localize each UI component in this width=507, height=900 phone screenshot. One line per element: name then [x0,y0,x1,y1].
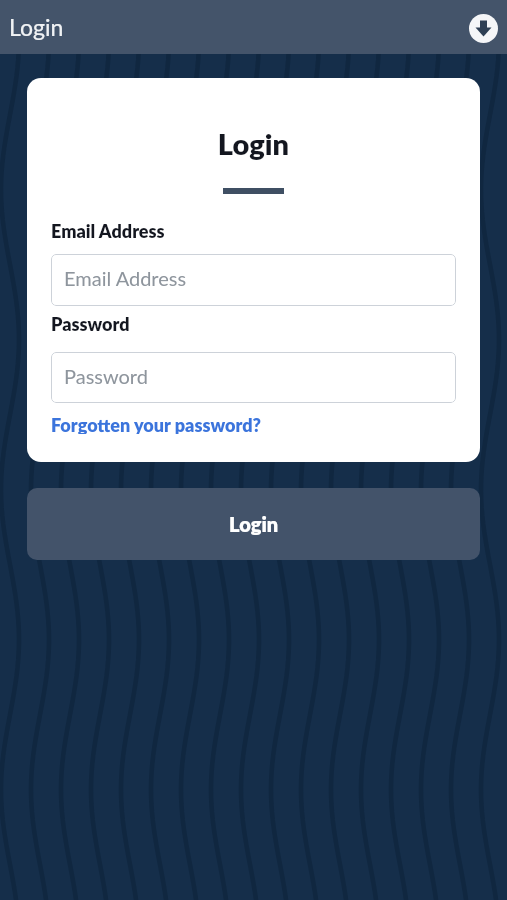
button[interactable]: Login [27,488,480,560]
button[interactable] [469,14,498,43]
button[interactable]: Forgotten your password? [51,414,261,434]
staticText: Email Address [64,266,187,290]
staticText: Password [64,364,148,388]
button[interactable]: Password [51,352,456,403]
button[interactable]: Email Address [51,254,456,306]
staticText: Login [9,13,64,41]
staticText: Email Address [51,220,165,242]
staticText: Password [51,313,130,335]
staticText: Login [51,126,456,161]
staticText: Login [229,512,279,536]
